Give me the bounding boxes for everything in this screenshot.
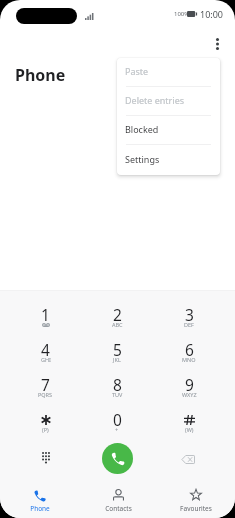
- button[interactable]: 8: [81, 370, 153, 405]
- staticText: MNO: [182, 356, 196, 363]
- button[interactable]: Keypad: [31, 442, 61, 472]
- staticText: TUV: [112, 391, 123, 398]
- button[interactable]: 0: [81, 405, 153, 440]
- staticText: Settings: [125, 153, 160, 165]
- button[interactable]: 2: [81, 300, 153, 335]
- button[interactable]: 6: [153, 335, 225, 370]
- button[interactable]: Paste: [117, 58, 220, 87]
- staticText: 8: [113, 374, 122, 395]
- staticText: Contacts: [105, 504, 132, 513]
- button[interactable]: Phone: [0, 480, 79, 518]
- button[interactable]: 1: [10, 300, 81, 335]
- staticText: (P): [42, 426, 49, 433]
- button[interactable]: Delete entries: [117, 87, 220, 116]
- staticText: 5: [113, 339, 122, 360]
- button[interactable]: (P): [10, 405, 81, 440]
- staticText: 100%: [174, 10, 190, 18]
- staticText: 4: [41, 339, 50, 360]
- staticText: +: [115, 426, 119, 433]
- button[interactable]: More options: [206, 33, 228, 55]
- button[interactable]: Favourites: [157, 480, 235, 518]
- staticText: 10:00: [200, 8, 224, 20]
- staticText: Blocked: [125, 123, 159, 135]
- staticText: (W): [185, 426, 194, 433]
- staticText: Phone: [30, 504, 50, 513]
- staticText: ABC: [112, 321, 123, 328]
- button[interactable]: Call: [102, 443, 133, 474]
- staticText: 3: [185, 304, 194, 325]
- staticText: Favourites: [180, 504, 212, 513]
- staticText: 0: [113, 409, 122, 430]
- staticText: 7: [41, 374, 50, 395]
- button[interactable]: Settings: [117, 145, 220, 174]
- button[interactable]: Blocked: [117, 116, 220, 145]
- button[interactable]: 3: [153, 300, 225, 335]
- button[interactable]: 7: [10, 370, 81, 405]
- staticText: 9: [185, 374, 194, 395]
- staticText: DEF: [184, 321, 194, 328]
- staticText: Delete entries: [125, 94, 185, 106]
- button[interactable]: 5: [81, 335, 153, 370]
- staticText: GHI: [41, 356, 51, 363]
- button[interactable]: (W): [153, 405, 225, 440]
- staticText: WXYZ: [182, 391, 197, 398]
- staticText: PQRS: [38, 391, 53, 398]
- button[interactable]: Contacts: [79, 480, 157, 518]
- staticText: 2: [113, 304, 122, 325]
- staticText: 6: [185, 339, 194, 360]
- button[interactable]: 9: [153, 370, 225, 405]
- button[interactable]: 4: [10, 335, 81, 370]
- staticText: Phone: [15, 64, 66, 86]
- button[interactable]: Backspace: [173, 444, 203, 474]
- staticText: 1: [41, 304, 50, 325]
- staticText: Paste: [125, 65, 149, 77]
- staticText: JKL: [113, 356, 121, 363]
